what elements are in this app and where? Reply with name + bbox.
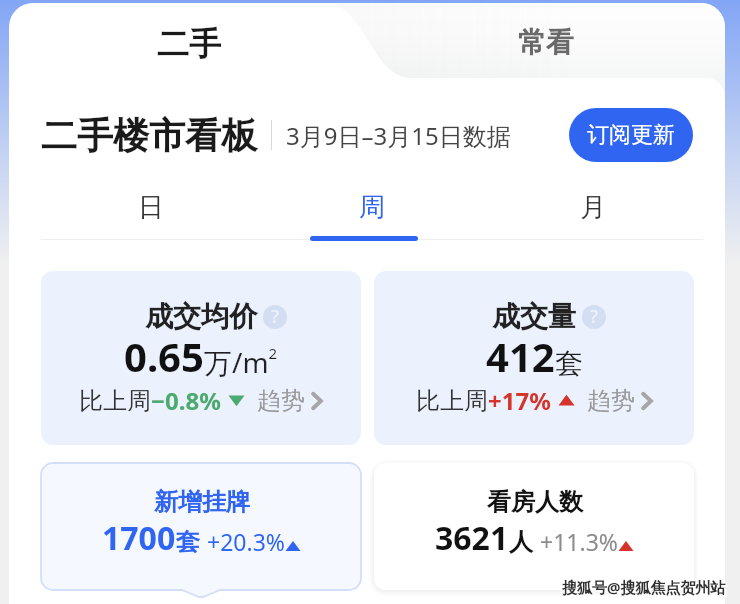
staticText: 3621	[435, 516, 509, 560]
staticText: 趋势	[257, 386, 305, 416]
staticText: 看房人数	[487, 487, 583, 517]
button[interactable]: 新增挂牌	[41, 463, 361, 590]
button[interactable]: 看房人数	[374, 463, 694, 590]
button[interactable]: 订阅更新	[569, 108, 693, 162]
button[interactable]: 常看	[404, 3, 725, 77]
staticText: 套	[176, 527, 200, 557]
staticText: 搜狐号@搜狐焦点贺州站	[564, 579, 728, 599]
button[interactable]: 月	[482, 176, 703, 242]
staticText: 月	[580, 191, 606, 224]
staticText: 套	[555, 346, 583, 381]
staticText: 新增挂牌	[154, 487, 250, 517]
staticText: −0.8%	[151, 384, 221, 417]
staticText: 0.65	[124, 329, 204, 383]
staticText: 常看	[518, 25, 574, 60]
staticText: 订阅更新	[587, 121, 675, 149]
staticText: 二手楼市看板	[41, 113, 257, 158]
staticText: 趋势	[587, 386, 635, 416]
staticText: 日	[138, 191, 164, 224]
button[interactable]: 日	[41, 176, 261, 242]
staticText: 人	[509, 527, 533, 557]
button[interactable]: 说明	[582, 305, 606, 329]
staticText: +11.3%	[540, 526, 618, 557]
staticText: 比上周	[416, 386, 488, 416]
staticText: ?	[590, 305, 598, 328]
button[interactable]: 周	[261, 176, 482, 242]
staticText: 412	[486, 329, 555, 383]
staticText: 成交量	[492, 299, 576, 334]
staticText: +17%	[488, 384, 551, 417]
staticText: +20.3%	[207, 526, 285, 557]
staticText: 1700	[102, 516, 176, 560]
staticText: 比上周	[79, 386, 151, 416]
staticText: 二手	[157, 24, 221, 64]
staticText: 3月9日–3月15日数据	[286, 119, 511, 152]
staticText: 成交均价	[145, 299, 257, 334]
button[interactable]: 成交量	[374, 271, 694, 445]
button[interactable]: 说明	[263, 305, 287, 329]
staticText: 万/m2	[204, 343, 278, 381]
staticText: 搜狐号@搜狐焦点贺州站	[562, 577, 726, 597]
staticText: 周	[359, 191, 385, 224]
staticText: ?	[271, 305, 279, 328]
button[interactable]: 二手	[9, 3, 341, 79]
button[interactable]: 成交均价	[41, 271, 361, 445]
